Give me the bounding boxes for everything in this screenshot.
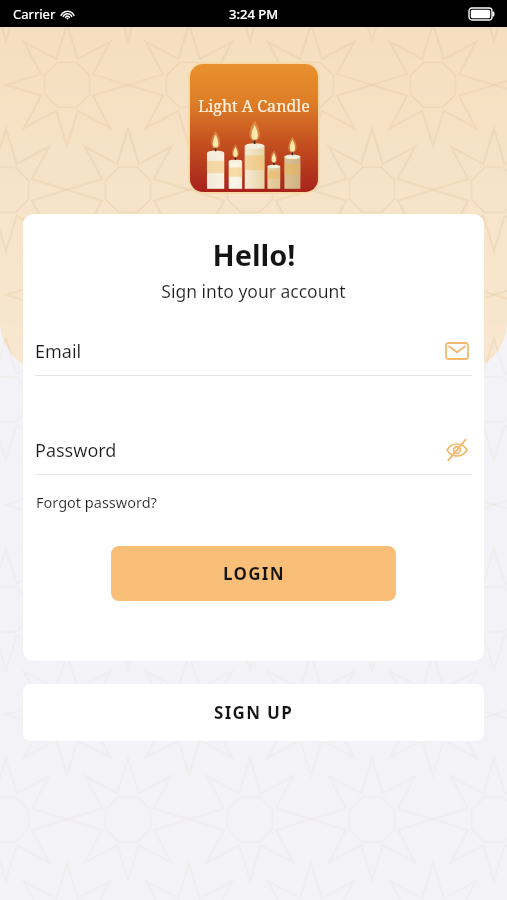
staticText: SIGN UP [214, 701, 294, 724]
staticText: LOGIN [223, 562, 285, 585]
button[interactable]: Show password [442, 435, 472, 465]
staticText: 3:24 PM [229, 5, 279, 23]
button[interactable]: SIGN UP [23, 684, 484, 741]
button[interactable]: Email [442, 336, 472, 366]
button[interactable]: Light A Candle logo [190, 64, 318, 192]
staticText: Light A Candle [198, 95, 310, 117]
staticText: Email [35, 339, 442, 364]
button[interactable]: Forgot password? [33, 489, 160, 515]
button[interactable]: LOGIN [111, 546, 396, 601]
staticText: Password [35, 438, 442, 463]
button[interactable]: Email [35, 335, 472, 376]
staticText: Sign into your account [161, 279, 346, 303]
staticText: Carrier [13, 5, 56, 23]
staticText: Forgot password? [36, 492, 157, 512]
button[interactable]: Password [35, 434, 472, 475]
staticText: Hello! [212, 235, 296, 274]
